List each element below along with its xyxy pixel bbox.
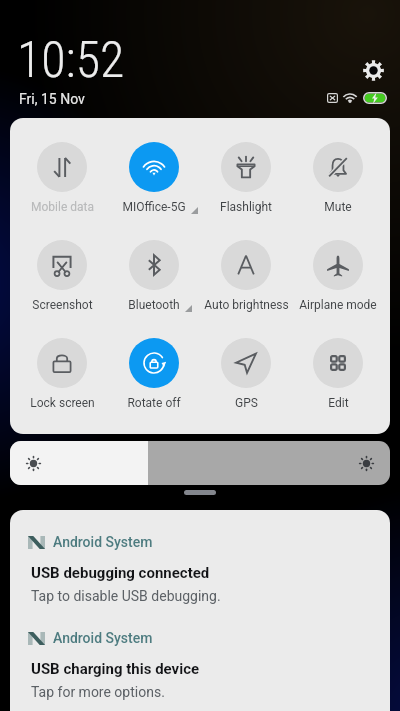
staticText: Flashlight bbox=[220, 200, 272, 214]
button[interactable]: Edit bbox=[292, 338, 384, 410]
staticText: Android System bbox=[53, 630, 153, 646]
button[interactable]: Lock screen bbox=[16, 338, 108, 410]
staticText: 10:52 bbox=[17, 31, 125, 90]
staticText: Tap for more options. bbox=[31, 684, 165, 700]
button[interactable]: Mute bbox=[292, 142, 384, 214]
button[interactable]: Expand bbox=[184, 490, 216, 495]
staticText: Auto brightness bbox=[204, 298, 289, 312]
staticText: Mobile data bbox=[31, 200, 94, 214]
staticText: Edit bbox=[328, 396, 349, 410]
button[interactable]: GPS bbox=[200, 338, 292, 410]
staticText: USB debugging connected bbox=[31, 564, 210, 582]
button[interactable]: Bluetooth bbox=[108, 240, 200, 312]
button[interactable]: Screenshot bbox=[16, 240, 108, 312]
button[interactable]: Android System bbox=[10, 622, 390, 711]
button[interactable]: Rotate off bbox=[108, 338, 200, 410]
button[interactable]: Flashlight bbox=[200, 142, 292, 214]
button[interactable]: Mobile data bbox=[16, 142, 108, 214]
staticText: Airplane mode bbox=[299, 298, 377, 312]
button[interactable]: Auto brightness bbox=[200, 240, 292, 312]
staticText: Bluetooth bbox=[128, 298, 180, 312]
button[interactable]: MIOffice-5G bbox=[108, 142, 200, 214]
button[interactable]: Android System bbox=[10, 526, 390, 622]
staticText: USB charging this device bbox=[31, 660, 200, 678]
button[interactable]: Brightness bbox=[10, 441, 390, 485]
staticText: Lock screen bbox=[30, 396, 95, 410]
staticText: Fri, 15 Nov bbox=[19, 91, 85, 107]
button[interactable]: Settings bbox=[363, 60, 384, 81]
staticText: Screenshot bbox=[32, 298, 93, 312]
staticText: Rotate off bbox=[127, 396, 181, 410]
button[interactable]: Airplane mode bbox=[292, 240, 384, 312]
staticText: Tap to disable USB debugging. bbox=[31, 588, 221, 604]
staticText: MIOffice-5G bbox=[122, 200, 186, 214]
staticText: Mute bbox=[324, 200, 352, 214]
staticText: GPS bbox=[235, 396, 258, 410]
staticText: Android System bbox=[53, 534, 153, 550]
